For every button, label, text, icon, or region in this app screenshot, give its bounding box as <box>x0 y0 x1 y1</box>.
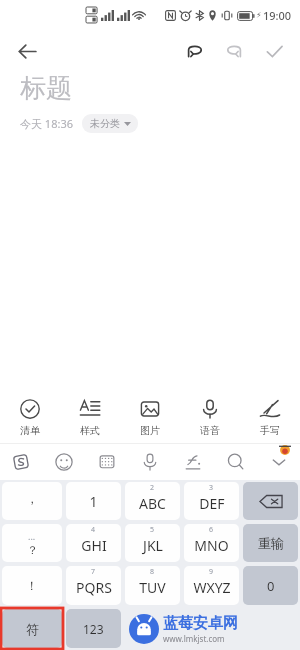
staticText: 6 <box>209 525 214 535</box>
button[interactable]: Sogou input method <box>0 444 42 480</box>
button[interactable]: Redo <box>218 35 250 67</box>
button[interactable]: 0 <box>243 566 298 605</box>
staticText: 3 <box>209 483 214 493</box>
button[interactable]: Save <box>258 35 290 67</box>
staticText: 符 <box>26 621 39 637</box>
staticText: ⚡ <box>256 11 262 20</box>
button[interactable]: ， <box>2 482 62 520</box>
staticText: 1 <box>89 492 98 511</box>
staticText: GHI <box>81 536 107 555</box>
button[interactable]: 语音 <box>180 393 240 443</box>
staticText: 清单 <box>20 424 40 437</box>
staticText: 9 <box>209 567 214 577</box>
staticText: 0 <box>267 577 275 595</box>
button[interactable]: 5 <box>125 524 180 562</box>
button[interactable]: ... <box>2 524 62 562</box>
staticText: ？ <box>27 543 38 557</box>
staticText: ！ <box>26 578 38 593</box>
button[interactable]: 123 <box>66 609 121 648</box>
staticText: 今天 18:36 <box>20 116 73 131</box>
staticText: JKL <box>143 536 163 555</box>
staticText: ABC <box>139 494 166 513</box>
staticText: 7 <box>91 567 96 577</box>
button[interactable]: 未分类 <box>82 114 138 133</box>
button[interactable]: Handwriting input <box>171 444 214 480</box>
staticText: www.lmkjst.com <box>163 633 225 644</box>
staticText: 8 <box>150 567 155 577</box>
button[interactable]: Hide keyboard <box>264 447 294 477</box>
button[interactable]: 6 <box>184 524 239 562</box>
button[interactable]: 4 <box>66 524 121 562</box>
button[interactable]: Voice input <box>128 444 171 480</box>
button[interactable]: 2 <box>125 482 180 520</box>
button[interactable]: 3 <box>184 482 239 520</box>
button[interactable]: 样式 <box>60 393 120 443</box>
button[interactable]: Search <box>214 444 257 480</box>
button[interactable]: 7 <box>66 566 121 605</box>
button[interactable]: Backspace <box>243 482 298 520</box>
button[interactable]: 8 <box>125 566 180 605</box>
button[interactable]: 手写 <box>240 393 300 443</box>
staticText: ... <box>28 530 36 542</box>
staticText: PQRS <box>76 578 112 597</box>
staticText: 5 <box>150 525 155 535</box>
button[interactable]: Emoji <box>42 444 85 480</box>
staticText: 语音 <box>200 424 220 437</box>
button[interactable]: 清单 <box>0 393 60 443</box>
staticText: WXYZ <box>193 578 231 597</box>
staticText: 19:00 <box>263 8 292 23</box>
staticText: 手写 <box>260 424 280 437</box>
staticText: TUV <box>139 578 166 597</box>
button[interactable]: 9 <box>184 566 239 605</box>
staticText: ， <box>26 491 38 506</box>
staticText: 标题 <box>20 72 72 105</box>
staticText: 2 <box>150 483 155 493</box>
button[interactable]: Back <box>8 32 46 70</box>
staticText: 未分类 <box>90 117 120 130</box>
button[interactable]: ！ <box>2 566 62 605</box>
staticText: 样式 <box>80 424 100 437</box>
staticText: DEF <box>199 494 225 513</box>
button[interactable]: Symbols <box>2 609 62 648</box>
staticText: 123 <box>83 621 104 637</box>
button[interactable]: 图片 <box>120 393 180 443</box>
staticText: MNO <box>194 536 229 555</box>
staticText: 重输 <box>258 535 284 551</box>
staticText: 图片 <box>140 424 160 437</box>
button[interactable]: 重输 <box>243 524 298 562</box>
staticText: 4 <box>91 525 96 535</box>
button[interactable]: Keyboard layout <box>85 444 128 480</box>
button[interactable]: Undo <box>178 35 210 67</box>
staticText: 蓝莓安卓网 <box>163 614 238 633</box>
button[interactable]: 1 <box>66 482 121 520</box>
